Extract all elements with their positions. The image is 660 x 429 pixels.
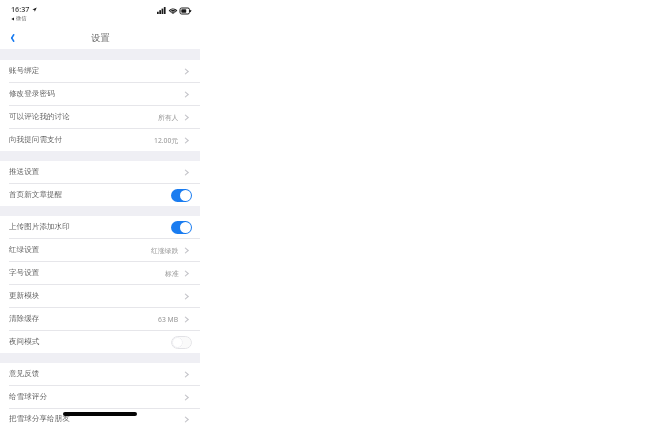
button[interactable]: 修改登录密码 — [0, 83, 200, 105]
button[interactable]: 意见反馈 — [0, 363, 200, 385]
staticText: 向我提问需支付 — [9, 135, 63, 145]
button[interactable]: Back — [0, 26, 26, 49]
button[interactable]: 字号设置 — [0, 262, 200, 284]
button[interactable]: Toggle on — [171, 221, 192, 234]
staticText: 把雪球分享给朋友 — [9, 414, 70, 424]
staticText: 修改登录密码 — [9, 89, 55, 99]
staticText: 16:37 — [11, 4, 30, 14]
staticText: 推送设置 — [9, 167, 40, 177]
staticText: 清除缓存 — [9, 314, 40, 324]
button[interactable]: 上传图片添加水印 — [0, 216, 200, 238]
staticText: 可以评论我的讨论 — [9, 112, 70, 122]
staticText: 首页新文章提醒 — [9, 190, 63, 200]
staticText: 红涨绿跌 — [151, 246, 179, 255]
staticText: 所有人 — [158, 113, 179, 122]
staticText: 上传图片添加水印 — [9, 222, 70, 232]
staticText: 63 MB — [158, 315, 179, 324]
button[interactable]: 红绿设置 — [0, 239, 200, 261]
button[interactable]: Toggle off — [171, 336, 192, 349]
staticText: 给雪球评分 — [9, 392, 47, 402]
staticText: 标准 — [165, 269, 179, 278]
staticText: 12.00元 — [154, 136, 179, 145]
staticText: 更新模块 — [9, 291, 40, 301]
button[interactable]: Toggle on — [171, 189, 192, 202]
button[interactable]: 账号绑定 — [0, 60, 200, 82]
staticText: 夜间模式 — [9, 337, 40, 347]
button[interactable]: 夜间模式 — [0, 331, 200, 353]
button[interactable]: 给雪球评分 — [0, 386, 200, 408]
staticText: 账号绑定 — [9, 66, 40, 76]
staticText: 意见反馈 — [9, 369, 40, 379]
button[interactable]: 向我提问需支付 — [0, 129, 200, 151]
staticText: 红绿设置 — [9, 245, 40, 255]
staticText: 微信 — [16, 15, 27, 22]
button[interactable]: 清除缓存 — [0, 308, 200, 330]
button[interactable]: 首页新文章提醒 — [0, 184, 200, 206]
button[interactable]: 更新模块 — [0, 285, 200, 307]
staticText: 设置 — [91, 32, 110, 44]
button[interactable]: 推送设置 — [0, 161, 200, 183]
button[interactable]: 把雪球分享给朋友 — [0, 409, 200, 429]
button[interactable]: 可以评论我的讨论 — [0, 106, 200, 128]
staticText: 字号设置 — [9, 268, 40, 278]
